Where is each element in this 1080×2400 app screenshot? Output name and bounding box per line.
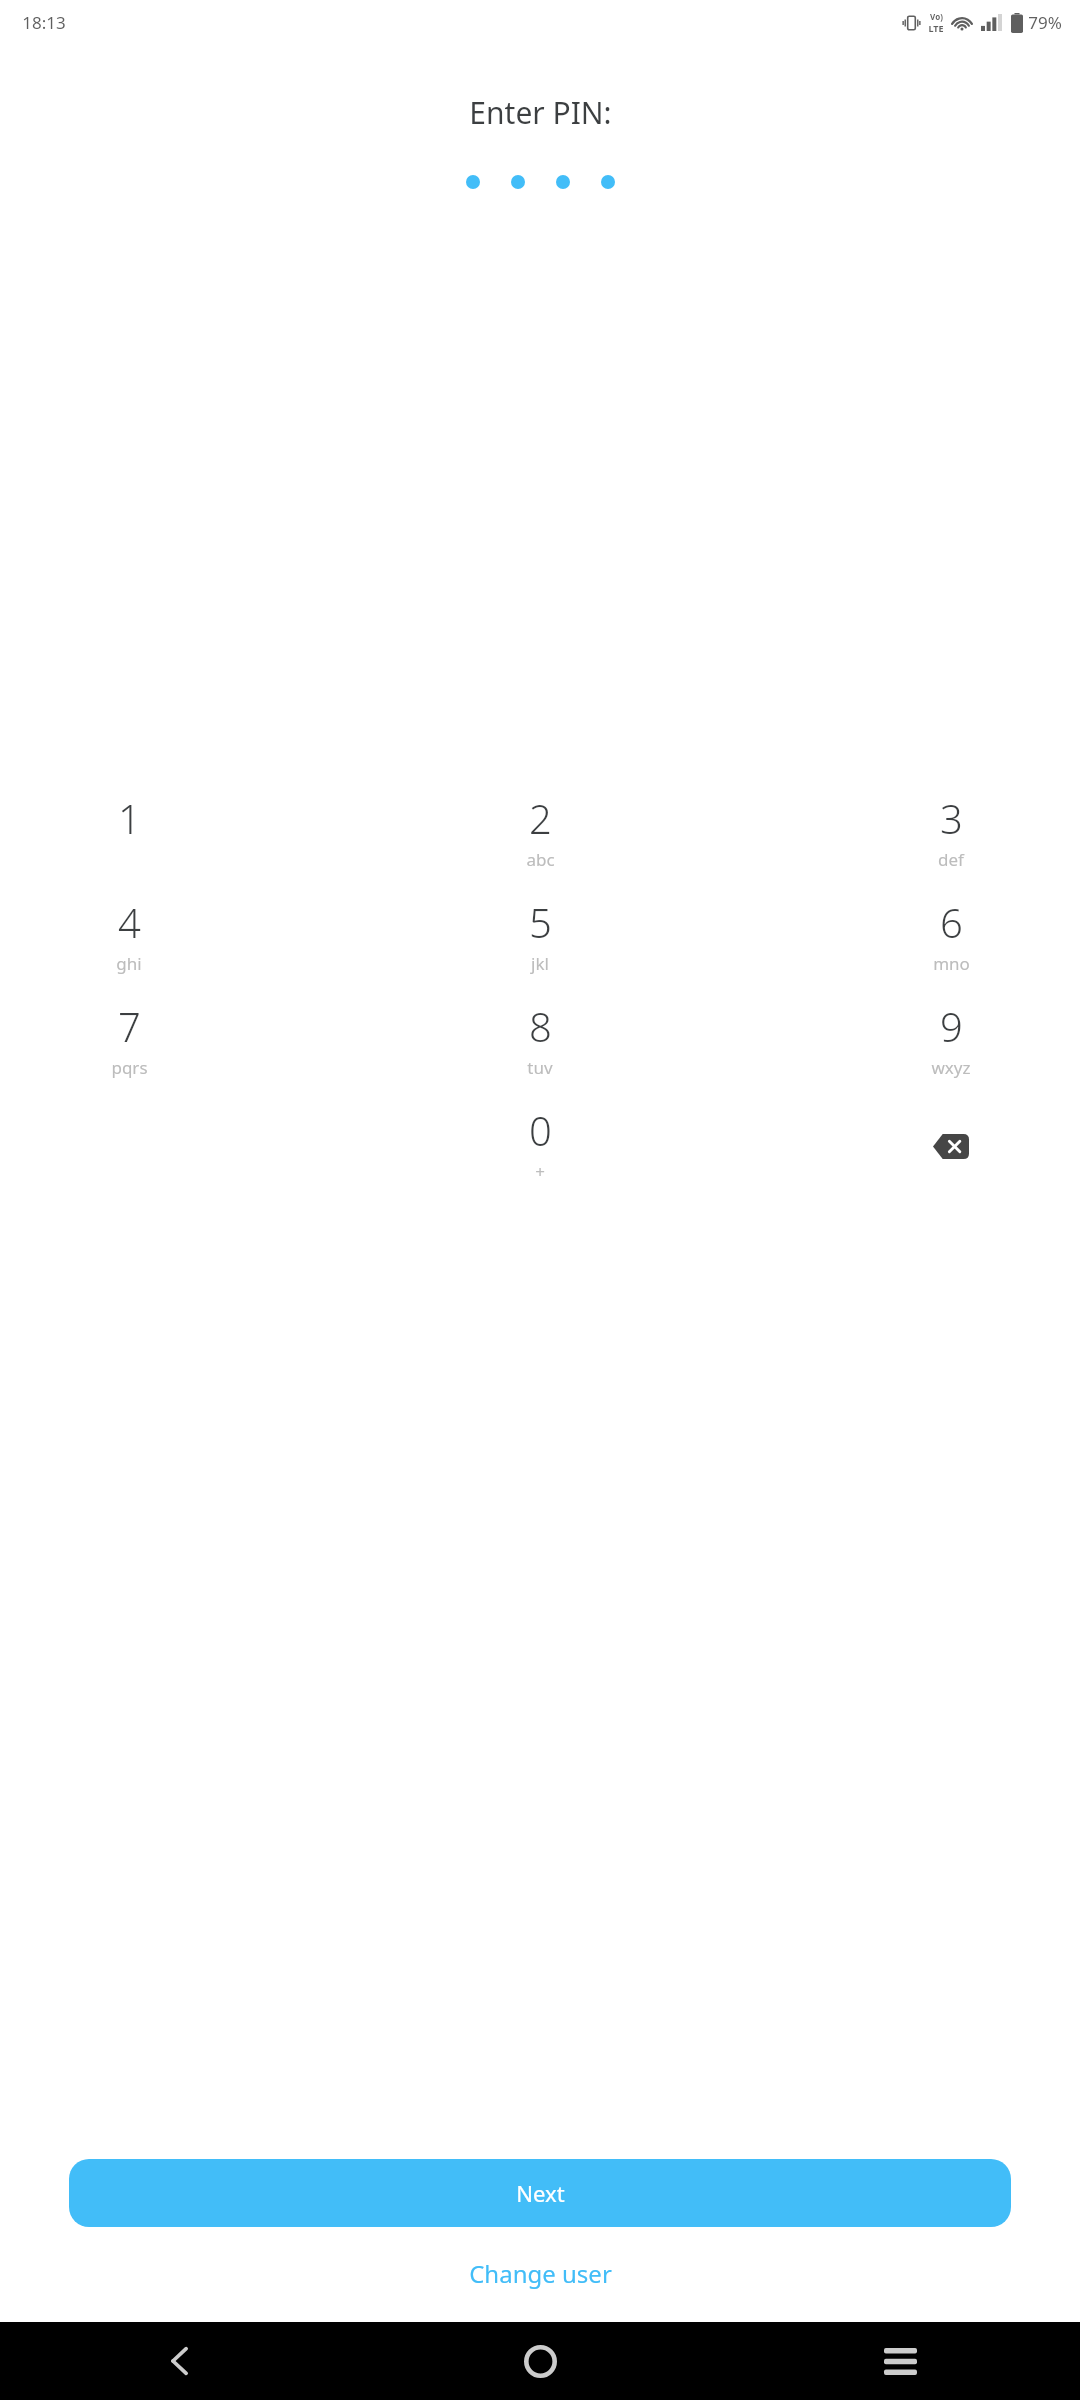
button[interactable]: 0 (501, 1103, 579, 1183)
staticText: 8 (529, 999, 552, 1053)
button[interactable]: 1 (90, 791, 168, 869)
staticText: abc (526, 848, 555, 871)
button[interactable]: 3 (912, 791, 990, 871)
staticText: Enter PIN: (469, 92, 612, 133)
button[interactable]: 5 (501, 895, 579, 975)
staticText: 0 (529, 1103, 552, 1157)
staticText: + (535, 1160, 545, 1183)
staticText: 9 (940, 999, 963, 1053)
staticText: Vo) (930, 11, 943, 22)
button[interactable]: Backspace (912, 1103, 990, 1189)
button[interactable]: 6 (912, 895, 990, 975)
staticText: 6 (940, 895, 963, 949)
staticText: 79% (1028, 11, 1062, 34)
staticText: LTE (928, 22, 944, 34)
staticText: ghi (116, 952, 142, 975)
staticText: 3 (940, 791, 963, 845)
staticText: mno (933, 952, 970, 975)
staticText: 7 (118, 999, 141, 1053)
staticText: tuv (527, 1056, 553, 1079)
staticText: 1 (118, 791, 141, 845)
staticText: 4 (118, 895, 141, 949)
button[interactable]: 8 (501, 999, 579, 1079)
button[interactable]: Next (69, 2159, 1011, 2227)
staticText: Change user (469, 2257, 612, 2290)
button[interactable]: Recent apps (720, 2322, 1080, 2400)
button[interactable]: Back (0, 2322, 360, 2400)
button[interactable]: Home (360, 2322, 720, 2400)
staticText: Next (516, 2178, 565, 2208)
staticText: jkl (531, 952, 549, 975)
button[interactable]: 4 (90, 895, 168, 975)
button[interactable]: Change user (0, 2251, 1080, 2296)
staticText: pqrs (111, 1056, 148, 1079)
staticText: def (938, 848, 964, 871)
staticText: 5 (529, 895, 552, 949)
staticText: wxyz (931, 1056, 971, 1079)
button[interactable]: 2 (501, 791, 579, 871)
staticText: 2 (529, 791, 552, 845)
button[interactable]: 9 (912, 999, 990, 1079)
staticText: 18:13 (22, 11, 66, 34)
button[interactable]: 7 (90, 999, 168, 1079)
